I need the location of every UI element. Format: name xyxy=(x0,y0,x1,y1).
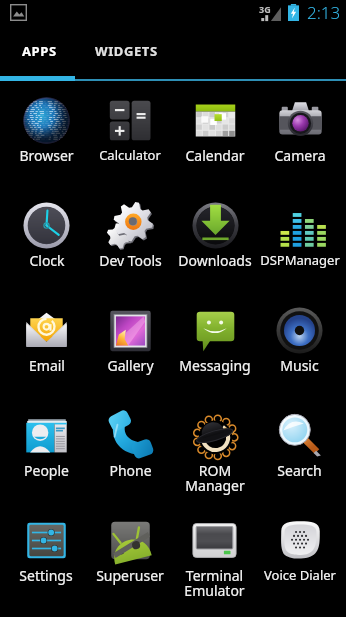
staticText: WIDGETS xyxy=(95,42,158,60)
button[interactable]: Search xyxy=(257,396,342,501)
staticText: DSPManager xyxy=(260,251,340,269)
button[interactable]: Music xyxy=(257,291,342,396)
button[interactable]: WIDGETS xyxy=(78,25,174,76)
staticText: Voice Dialer xyxy=(264,566,336,584)
staticText: Clock xyxy=(29,251,65,270)
staticText: Gallery xyxy=(107,356,154,375)
staticText: Downloads xyxy=(178,251,252,270)
button[interactable]: Downloads xyxy=(172,186,257,291)
staticText: Phone xyxy=(109,461,152,480)
staticText: Camera xyxy=(274,146,326,165)
button[interactable]: Messaging xyxy=(172,291,257,396)
button[interactable]: Email xyxy=(4,291,88,396)
staticText: Calendar xyxy=(185,146,245,165)
button[interactable]: Calendar xyxy=(172,81,257,186)
button[interactable]: Dev Tools xyxy=(88,186,172,291)
button[interactable]: Browser xyxy=(4,81,88,186)
staticText: ROM Manager xyxy=(185,461,245,495)
button[interactable]: Terminal Emulator xyxy=(172,501,257,606)
button[interactable]: Phone xyxy=(88,396,172,501)
staticText: Dev Tools xyxy=(99,251,162,270)
button[interactable]: Calculator xyxy=(88,81,172,186)
button[interactable]: Clock xyxy=(4,186,88,291)
staticText: Settings xyxy=(19,566,73,585)
other: Screenshot xyxy=(10,4,27,21)
button[interactable]: Voice Dialer xyxy=(257,501,342,606)
staticText: People xyxy=(24,461,69,480)
button[interactable]: People xyxy=(4,396,88,501)
button[interactable]: APPS xyxy=(0,25,78,76)
button[interactable]: Superuser xyxy=(88,501,172,606)
button[interactable]: Camera xyxy=(257,81,342,186)
staticText: Search xyxy=(277,461,322,480)
button[interactable]: DSPManager xyxy=(257,186,342,291)
button[interactable]: ROM Manager xyxy=(172,396,257,501)
staticText: Music xyxy=(280,356,319,375)
staticText: Email xyxy=(29,356,65,375)
button[interactable]: Settings xyxy=(4,501,88,606)
staticText: Browser xyxy=(19,146,74,165)
staticText: Messaging xyxy=(179,356,251,375)
staticText: Calculator xyxy=(99,146,161,164)
staticText: Superuser xyxy=(96,566,164,585)
staticText: 3G xyxy=(259,3,271,15)
staticText: 2:13 xyxy=(307,1,341,24)
staticText: APPS xyxy=(22,42,57,60)
staticText: Terminal Emulator xyxy=(184,566,245,600)
button[interactable]: Gallery xyxy=(88,291,172,396)
